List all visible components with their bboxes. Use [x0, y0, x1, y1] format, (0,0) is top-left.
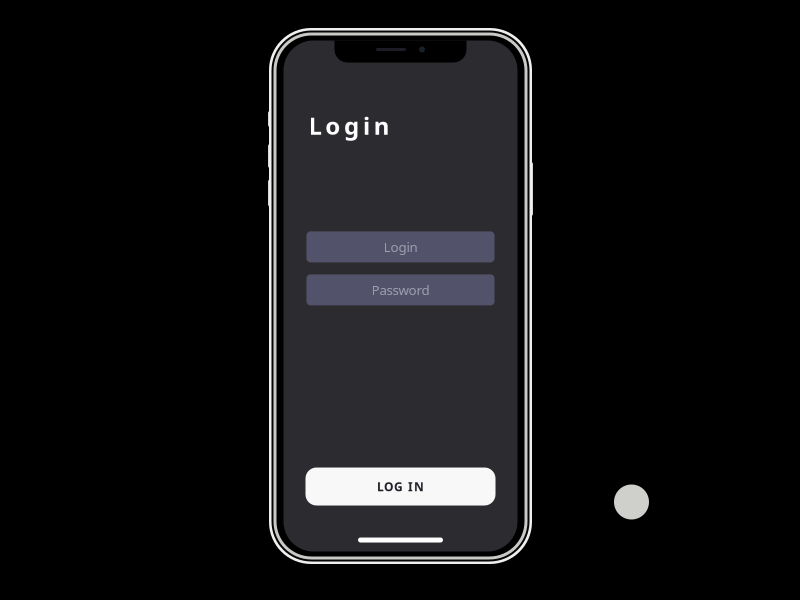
staticText: LOG IN: [377, 478, 424, 494]
staticText: Login: [383, 238, 417, 256]
button[interactable]: Login: [306, 231, 494, 262]
staticText: Password: [371, 281, 429, 299]
button[interactable]: LOG IN: [305, 467, 495, 505]
button[interactable]: Password: [306, 274, 494, 305]
staticText: Login: [308, 109, 390, 141]
